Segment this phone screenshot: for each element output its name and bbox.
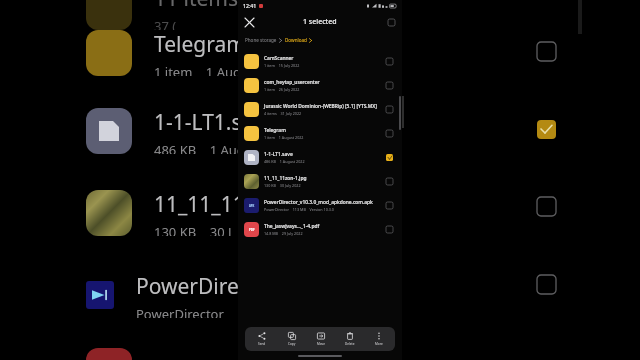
button[interactable]: 1-1-LT1.save xyxy=(238,145,402,169)
staticText: PDF xyxy=(249,228,255,232)
button[interactable]: CamScanner xyxy=(238,49,402,73)
staticText: The_jaswjvays..._1-4.pdf xyxy=(264,223,320,230)
staticText: 1 item 26 July 2022 xyxy=(264,87,300,92)
button[interactable]: Delete xyxy=(335,327,364,351)
staticText: 1-1-LT1.save xyxy=(264,151,293,158)
staticText: 486 KB 1 Aug xyxy=(154,141,245,154)
button[interactable]: Send xyxy=(247,327,277,351)
staticText: Telegram xyxy=(264,127,286,134)
staticText: Jurassic World Dominion-(WEBRip) [5.1] [… xyxy=(264,103,377,110)
staticText: 11_11_11z xyxy=(154,190,255,219)
button[interactable]: Select Jurassic World Dominion-(WEBRip) … xyxy=(382,102,396,116)
button[interactable]: Jurassic World Dominion-(WEBRip) [5.1] [… xyxy=(238,97,402,121)
staticText: PowerDirector_v10.3.0_mod_apkdone.com.ap… xyxy=(264,199,373,206)
staticText: 1-1-LT1.sav xyxy=(154,108,264,137)
button[interactable]: Select com_heytap_usercenter xyxy=(382,78,396,92)
button[interactable]: com_heytap_usercenter xyxy=(238,73,402,97)
staticText: 1 item 1 August 2022 xyxy=(264,135,304,140)
button[interactable]: Close selection xyxy=(238,11,260,33)
staticText: 130 KB 30 J xyxy=(154,223,232,236)
button[interactable]: Select 11_11_11zon-1.jpg xyxy=(382,174,396,188)
staticText: Delete xyxy=(345,342,355,346)
staticText: Move xyxy=(317,342,325,346)
staticText: Phone storage xyxy=(245,37,277,43)
staticText: Copy xyxy=(288,342,296,346)
staticText: 11_11_11zon-1.jpg xyxy=(264,175,307,182)
button[interactable]: Select The_jaswjvays..._1-4.pdf xyxy=(382,222,396,236)
button[interactable]: Select CamScanner xyxy=(382,54,396,68)
staticText: 11 items xyxy=(154,0,239,13)
staticText: APK xyxy=(249,204,255,208)
staticText: 12:41 xyxy=(243,2,257,9)
staticText: CamScanner xyxy=(264,55,294,62)
button[interactable]: Select PowerDirector_v10.3.0_mod_apkdone… xyxy=(382,198,396,212)
button[interactable]: More xyxy=(364,327,393,351)
staticText: PowerDirector 113 MB Version 10.3.0 xyxy=(264,207,334,212)
staticText: 1 item 15 July 2022 xyxy=(264,63,300,68)
staticText: Telegram xyxy=(154,30,246,59)
staticText: Send xyxy=(258,342,266,346)
button[interactable]: Select Telegram xyxy=(382,126,396,140)
staticText: The jaswjva xyxy=(154,357,268,360)
button[interactable]: PDF xyxy=(238,217,402,241)
button[interactable]: Copy xyxy=(277,327,306,351)
staticText: 486 KB 1 August 2022 xyxy=(264,159,305,164)
button[interactable]: 11_11_11zon-1.jpg xyxy=(238,169,402,193)
staticText: PowerDirect xyxy=(136,272,257,301)
staticText: 4 items 31 July 2022 xyxy=(264,111,302,116)
staticText: 130 KB 30 July 2022 xyxy=(264,183,301,188)
button[interactable]: Move xyxy=(306,327,335,351)
button[interactable]: Telegram xyxy=(238,121,402,145)
staticText: Download xyxy=(285,37,307,43)
staticText: 37 ( xyxy=(154,17,177,30)
button[interactable]: APK xyxy=(238,193,402,217)
staticText: 1 item 1 Aug xyxy=(154,63,242,76)
staticText: More xyxy=(375,342,383,346)
staticText: 1 selected xyxy=(303,17,337,27)
staticText: com_heytap_usercenter xyxy=(264,79,320,86)
staticText: PowerDirector xyxy=(136,305,224,318)
button[interactable]: Deselect 1-1-LT1.save xyxy=(382,150,396,164)
button[interactable]: Select all xyxy=(380,11,402,33)
staticText: 14.8 MB 29 July 2022 xyxy=(264,231,303,236)
